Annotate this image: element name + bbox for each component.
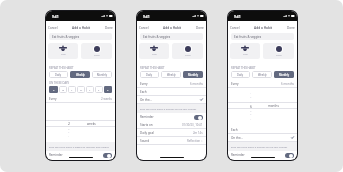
staticText: Reminder bbox=[140, 115, 154, 119]
staticText: months bbox=[268, 104, 279, 108]
button[interactable]: Cancel bbox=[139, 25, 149, 31]
button[interactable]: Eat fruits & veggies bbox=[49, 33, 112, 40]
staticText: Icon bbox=[152, 53, 157, 56]
button[interactable]: Icon bbox=[230, 43, 260, 59]
staticText: Reminder bbox=[49, 153, 63, 157]
staticText: Eat fruits & veggies bbox=[52, 35, 80, 39]
button[interactable]: Reminder bbox=[46, 151, 115, 159]
button[interactable]: T bbox=[68, 86, 76, 93]
staticText: 3 bbox=[68, 127, 70, 130]
button[interactable]: Color bbox=[263, 43, 294, 59]
button[interactable]: Daily bbox=[140, 71, 159, 78]
button[interactable]: Every bbox=[46, 95, 115, 102]
staticText: ON THESE DAYS bbox=[49, 81, 69, 85]
button[interactable]: Daily bbox=[49, 71, 68, 78]
staticText: Icon bbox=[243, 53, 248, 56]
staticText: Eat fruits & veggies bbox=[234, 35, 262, 39]
staticText: Monthly bbox=[279, 73, 290, 77]
button[interactable]: S bbox=[49, 86, 58, 93]
staticText: Cancel bbox=[48, 26, 58, 30]
button[interactable]: Reminder bbox=[137, 113, 206, 121]
staticText: Sound bbox=[140, 139, 150, 143]
button[interactable]: Eat fruits & veggies bbox=[231, 33, 294, 40]
staticText: Each bbox=[140, 90, 147, 94]
button[interactable]: Every bbox=[137, 80, 206, 87]
button[interactable]: Daily bbox=[231, 71, 250, 78]
staticText: Each will occur every 6 months on the fi… bbox=[140, 107, 197, 110]
button[interactable]: Done bbox=[196, 25, 204, 31]
staticText: Starts on bbox=[140, 123, 153, 127]
button[interactable]: On the... bbox=[137, 96, 206, 103]
button[interactable]: Weekly bbox=[70, 71, 90, 78]
button[interactable]: Every bbox=[228, 80, 297, 87]
button[interactable]: M bbox=[59, 86, 67, 93]
button[interactable]: Monthly bbox=[274, 71, 294, 78]
staticText: Weekly bbox=[258, 73, 267, 77]
other: Reminder toggle bbox=[194, 115, 203, 120]
button[interactable]: S bbox=[104, 86, 112, 93]
staticText: 4 bbox=[250, 96, 252, 99]
staticText: 6 bbox=[250, 104, 252, 109]
staticText: Reflection › bbox=[187, 139, 203, 143]
button[interactable]: Eat fruits & veggies bbox=[140, 33, 203, 40]
staticText: Color bbox=[276, 54, 282, 57]
button[interactable]: Cancel bbox=[230, 25, 240, 31]
staticText: 2 weeks bbox=[101, 97, 112, 101]
button[interactable]: Color bbox=[172, 43, 203, 59]
staticText: 3 bbox=[250, 92, 252, 95]
staticText: Every bbox=[231, 82, 239, 86]
button[interactable]: On the... bbox=[228, 134, 297, 141]
button[interactable]: Monthly bbox=[92, 71, 112, 78]
staticText: Reminder bbox=[231, 153, 245, 157]
button[interactable]: Cancel bbox=[48, 25, 58, 31]
staticText: 2 bbox=[68, 121, 70, 126]
staticText: 9 bbox=[250, 118, 252, 121]
staticText: Cancel bbox=[230, 26, 240, 30]
staticText: Monthly bbox=[97, 73, 108, 77]
staticText: Every bbox=[140, 82, 148, 86]
staticText: Each bbox=[231, 128, 238, 132]
button[interactable]: Weekly bbox=[252, 71, 272, 78]
staticText: Done bbox=[105, 26, 113, 30]
button[interactable]: Done bbox=[105, 25, 113, 31]
button[interactable]: Reminder bbox=[228, 151, 297, 159]
button[interactable]: Color bbox=[81, 43, 112, 59]
staticText: 9:41 bbox=[234, 14, 241, 18]
staticText: Icon bbox=[61, 53, 66, 56]
staticText: 01/30/23, 10:41 bbox=[182, 123, 203, 127]
staticText: T bbox=[71, 88, 73, 91]
staticText: 9:41 bbox=[143, 14, 150, 18]
staticText: Eat fruits & veggies bbox=[143, 35, 171, 39]
button[interactable]: Daily goal bbox=[137, 129, 206, 136]
staticText: 4 bbox=[68, 131, 70, 134]
staticText: Add a Habit bbox=[254, 26, 273, 30]
staticText: 6 months bbox=[190, 82, 203, 86]
button[interactable]: Weekly bbox=[161, 71, 181, 78]
button[interactable]: Icon bbox=[48, 43, 78, 59]
staticText: Add a Habit bbox=[163, 26, 182, 30]
button[interactable]: F bbox=[95, 86, 103, 93]
button[interactable]: W bbox=[77, 86, 85, 93]
staticText: Each will occur every 2 weeks on Monday … bbox=[49, 145, 109, 148]
staticText: REPEAT THIS HABIT bbox=[140, 66, 165, 70]
staticText: 9:41 bbox=[52, 14, 59, 18]
staticText: Add a Habit bbox=[72, 26, 91, 30]
button[interactable]: Done bbox=[287, 25, 295, 31]
staticText: S bbox=[53, 88, 55, 91]
staticText: Done bbox=[196, 26, 204, 30]
staticText: F bbox=[98, 88, 100, 91]
button[interactable]: T bbox=[86, 86, 94, 93]
button[interactable]: Icon bbox=[139, 43, 169, 59]
button[interactable]: Each bbox=[137, 88, 206, 95]
staticText: 6 months bbox=[281, 82, 294, 86]
staticText: Done bbox=[287, 26, 295, 30]
staticText: REPEAT THIS HABIT bbox=[231, 66, 256, 70]
button[interactable]: Each bbox=[228, 126, 297, 133]
staticText: Weekly bbox=[76, 73, 85, 77]
other: Reminder toggle bbox=[285, 153, 294, 158]
button[interactable]: Starts on bbox=[137, 121, 206, 128]
button[interactable]: Sound bbox=[137, 137, 206, 144]
staticText: Daily bbox=[55, 73, 62, 77]
staticText: On the... bbox=[231, 136, 244, 140]
button[interactable]: Monthly bbox=[183, 71, 203, 78]
